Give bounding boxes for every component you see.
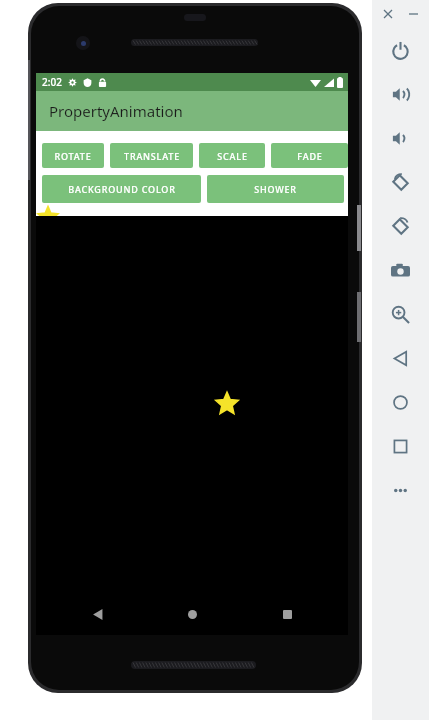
button[interactable]: Rotate left bbox=[372, 160, 429, 204]
staticText: PropertyAnimation bbox=[49, 101, 183, 121]
button[interactable]: Recent apps bbox=[272, 599, 302, 629]
staticText: SCALE bbox=[217, 150, 248, 162]
button[interactable]: TRANSLATE bbox=[110, 143, 193, 168]
button[interactable]: SHOWER bbox=[207, 175, 344, 203]
button[interactable]: SCALE bbox=[199, 143, 265, 168]
button[interactable]: Minimize bbox=[405, 6, 421, 22]
button[interactable]: Rotate right bbox=[372, 204, 429, 248]
button[interactable]: Home bbox=[177, 599, 207, 629]
staticText: 2:02 bbox=[42, 75, 62, 89]
staticText: SHOWER bbox=[254, 183, 297, 195]
button[interactable]: More bbox=[372, 468, 429, 512]
button[interactable]: Volume down bbox=[372, 116, 429, 160]
button[interactable]: Volume up bbox=[372, 72, 429, 116]
button[interactable]: Zoom bbox=[372, 292, 429, 336]
button[interactable]: ROTATE bbox=[42, 143, 104, 168]
staticText: FADE bbox=[297, 150, 323, 162]
button[interactable]: FADE bbox=[271, 143, 348, 168]
button[interactable]: Close bbox=[380, 6, 396, 22]
button[interactable]: Take screenshot bbox=[372, 248, 429, 292]
staticText: BACKGROUND COLOR bbox=[68, 183, 176, 195]
button[interactable]: Overview bbox=[372, 424, 429, 468]
staticText: TRANSLATE bbox=[124, 150, 180, 162]
button[interactable]: BACKGROUND COLOR bbox=[42, 175, 201, 203]
button[interactable]: Power bbox=[372, 28, 429, 72]
button[interactable]: Home bbox=[372, 380, 429, 424]
staticText: ROTATE bbox=[54, 150, 92, 162]
button[interactable]: Back bbox=[372, 336, 429, 380]
button[interactable]: Back bbox=[82, 599, 112, 629]
